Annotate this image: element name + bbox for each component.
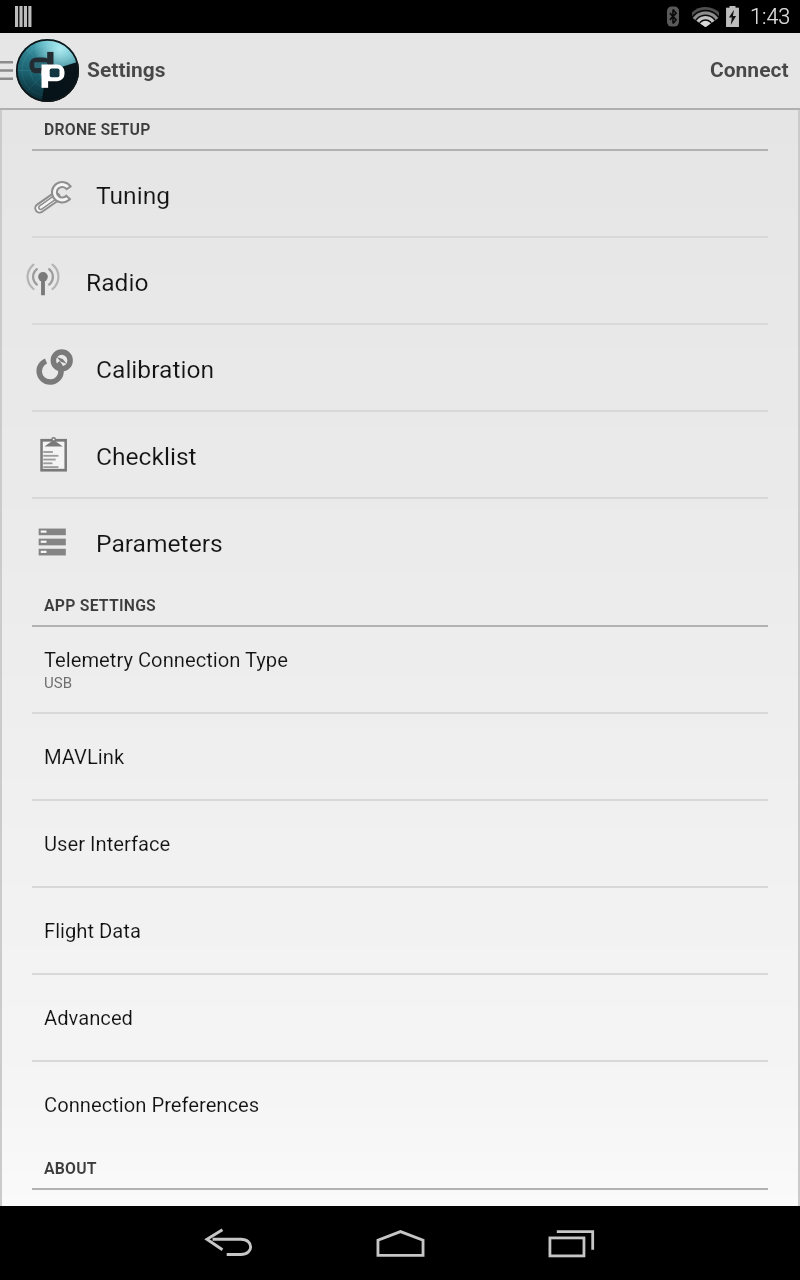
button[interactable]: Checklist — [0, 412, 800, 499]
button[interactable]: Back — [189, 1206, 269, 1280]
button[interactable]: MAVLink — [0, 714, 800, 801]
staticText: APP SETTINGS — [44, 596, 157, 615]
button[interactable]: Open navigation drawer — [0, 33, 13, 108]
staticText: Settings — [87, 58, 166, 83]
staticText: Advanced — [44, 1006, 133, 1030]
staticText: Flight Data — [44, 919, 141, 943]
staticText: Calibration — [96, 355, 215, 384]
staticText: MAVLink — [44, 745, 125, 769]
button[interactable]: Parameters — [0, 499, 800, 586]
button[interactable]: Tuning — [0, 151, 800, 238]
button[interactable]: Flight Data — [0, 888, 800, 975]
button[interactable]: Home — [360, 1206, 440, 1280]
staticText: Telemetry Connection Type — [44, 648, 288, 672]
staticText: 1:43 — [750, 4, 791, 29]
button[interactable]: Connection Preferences — [0, 1062, 800, 1149]
staticText: Parameters — [96, 529, 223, 558]
button[interactable]: Advanced — [0, 975, 800, 1062]
staticText: Connect — [710, 58, 789, 83]
staticText: ABOUT — [44, 1159, 97, 1178]
staticText: DRONE SETUP — [44, 120, 151, 139]
staticText: Radio — [86, 268, 149, 297]
button[interactable]: Recent apps — [532, 1206, 612, 1280]
staticText: Connection Preferences — [44, 1093, 260, 1117]
staticText: Checklist — [96, 442, 197, 471]
button[interactable]: Telemetry Connection Type — [0, 627, 800, 714]
button[interactable]: Connect — [692, 33, 800, 108]
staticText: User Interface — [44, 832, 171, 856]
staticText: Tuning — [96, 181, 171, 210]
button[interactable]: User Interface — [0, 801, 800, 888]
button[interactable]: Calibration — [0, 325, 800, 412]
button[interactable]: Radio — [0, 238, 800, 325]
staticText: USB — [44, 674, 72, 692]
